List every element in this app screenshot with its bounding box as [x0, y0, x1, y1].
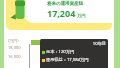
staticText: 16,000: [8, 54, 21, 59]
staticText: 10年目: [42, 41, 106, 47]
staticText: 万円: [77, 13, 86, 18]
staticText: 17,204: [47, 7, 76, 19]
button[interactable]: 10年目: [40, 39, 108, 68]
staticText: 元本：120万円: [46, 49, 75, 55]
staticText: (万円): [8, 38, 19, 43]
staticText: 将来の運用資産額: [47, 1, 84, 7]
staticText: 運用収益：17,084万円: [46, 57, 89, 63]
staticText: 18,000: [8, 45, 21, 50]
